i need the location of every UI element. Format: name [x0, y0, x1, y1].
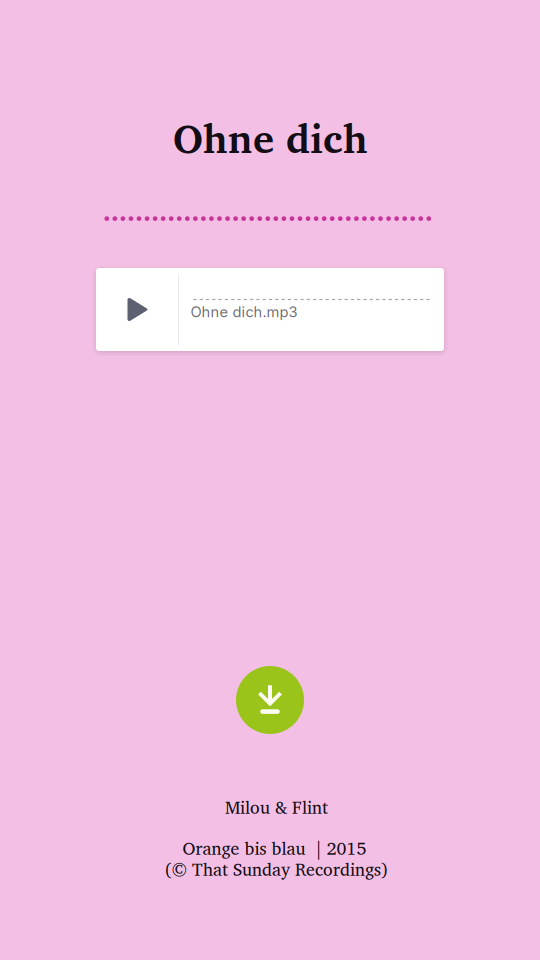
staticText: (© That Sunday Recordings) [165, 855, 388, 883]
staticText: Ohne dich [173, 106, 368, 170]
button[interactable]: Ohne dich.mp3 [96, 268, 444, 351]
button[interactable]: Download [236, 666, 304, 734]
staticText: Orange bis blau | 2015 [182, 834, 366, 862]
staticText: Ohne dich.mp3 [190, 303, 297, 321]
staticText: Milou & Flint [225, 793, 328, 821]
